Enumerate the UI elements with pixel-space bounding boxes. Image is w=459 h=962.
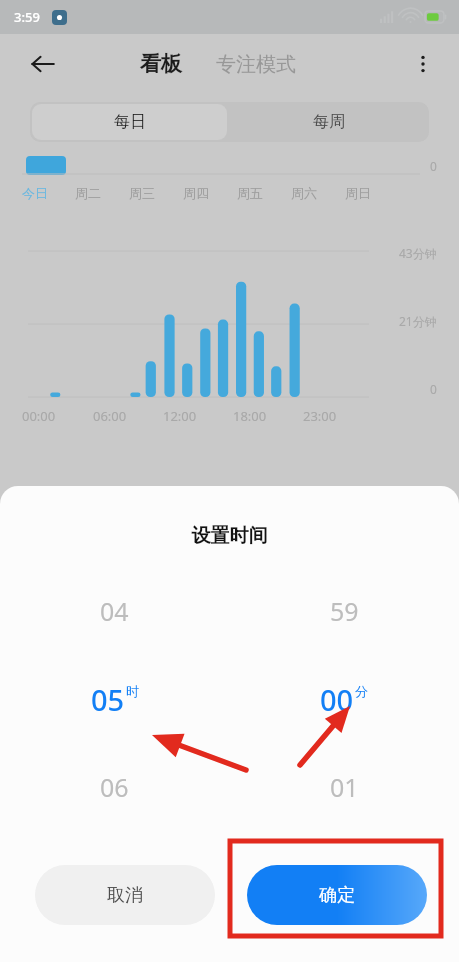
button[interactable]: 周三 — [129, 185, 183, 201]
staticText: 分 — [355, 683, 368, 699]
staticText: 23:00 — [303, 407, 337, 425]
staticText: 04 — [100, 594, 129, 628]
button[interactable]: 周四 — [183, 185, 237, 201]
staticText: 06:00 — [93, 407, 127, 425]
staticText: 看板 — [140, 51, 182, 77]
button[interactable]: 专注模式 — [210, 46, 302, 83]
staticText: 周五 — [237, 185, 263, 201]
button[interactable]: 04 — [0, 594, 229, 804]
staticText: 43分钟 — [399, 245, 437, 261]
button[interactable]: 取消 — [35, 865, 215, 925]
staticText: 今日 — [22, 185, 48, 201]
button[interactable]: 每周 — [229, 102, 429, 142]
staticText: 设置时间 — [0, 524, 459, 548]
staticText: 12:00 — [163, 407, 197, 425]
staticText: 06 — [100, 770, 129, 804]
button[interactable]: 59 — [229, 594, 459, 804]
staticText: 每日 — [114, 112, 146, 132]
button[interactable]: More options — [403, 44, 443, 84]
staticText: 专注模式 — [216, 52, 296, 77]
staticText: 3:59 — [14, 8, 40, 26]
staticText: 21分钟 — [399, 313, 437, 329]
staticText: 59 — [330, 594, 359, 628]
staticText: 周六 — [291, 185, 317, 201]
staticText: 时 — [126, 683, 139, 699]
staticText: 周三 — [129, 185, 155, 201]
staticText: 00:00 — [22, 407, 56, 425]
button[interactable]: 确定 — [247, 865, 427, 925]
button[interactable]: Back — [22, 43, 64, 85]
staticText: 周二 — [75, 185, 101, 201]
staticText: 01 — [330, 770, 359, 804]
staticText: 确定 — [319, 884, 355, 907]
button[interactable]: 每日 — [32, 104, 227, 140]
button[interactable]: 看板 — [134, 45, 188, 83]
staticText: 周日 — [345, 185, 371, 201]
staticText: 0 — [430, 158, 437, 174]
staticText: 00 — [320, 680, 354, 719]
button[interactable]: 周五 — [237, 185, 291, 201]
button[interactable]: 周六 — [291, 185, 345, 201]
staticText: 18:00 — [233, 407, 267, 425]
staticText: 每周 — [313, 112, 345, 132]
button[interactable]: 周二 — [75, 185, 129, 201]
button[interactable]: 周日 — [345, 185, 399, 201]
staticText: 周四 — [183, 185, 209, 201]
button[interactable]: 今日 — [22, 185, 75, 201]
staticText: 取消 — [107, 884, 143, 907]
staticText: 05 — [91, 680, 125, 719]
staticText: 0 — [430, 381, 437, 397]
